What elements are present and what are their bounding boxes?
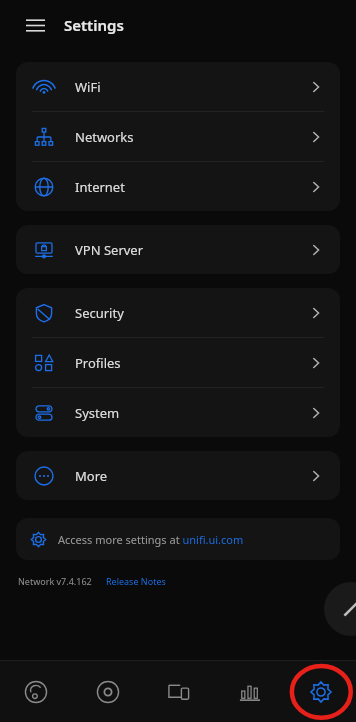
- button[interactable]: Security: [16, 288, 340, 337]
- button[interactable]: Settings: [285, 661, 356, 722]
- button[interactable]: Clients: [143, 661, 214, 722]
- button[interactable]: System: [16, 388, 340, 437]
- staticText: Access more settings at unifi.ui.com: [58, 532, 244, 547]
- button[interactable]: Profiles: [16, 338, 340, 387]
- button[interactable]: VPN Server: [16, 225, 340, 274]
- button[interactable]: Release Notes: [106, 575, 166, 587]
- staticText: Security: [75, 304, 124, 322]
- staticText: Settings: [64, 15, 124, 35]
- button[interactable]: Menu: [18, 8, 52, 42]
- button[interactable]: Edit: [324, 582, 356, 636]
- staticText: VPN Server: [75, 241, 144, 259]
- button[interactable]: Statistics: [214, 661, 285, 722]
- button[interactable]: Devices: [72, 661, 143, 722]
- staticText: Network v7.4.162: [18, 575, 92, 587]
- staticText: More: [75, 467, 108, 485]
- staticText: WiFi: [75, 78, 101, 96]
- button[interactable]: Access more settings at unifi.ui.com: [16, 518, 340, 560]
- staticText: Networks: [75, 128, 134, 146]
- button[interactable]: WiFi: [16, 62, 340, 111]
- button[interactable]: Internet: [16, 162, 340, 211]
- staticText: Release Notes: [106, 575, 166, 587]
- staticText: Internet: [75, 178, 125, 196]
- button[interactable]: Dashboard: [0, 661, 72, 722]
- button[interactable]: Networks: [16, 112, 340, 161]
- staticText: System: [75, 404, 120, 422]
- staticText: Profiles: [75, 354, 121, 372]
- button[interactable]: More: [16, 451, 340, 500]
